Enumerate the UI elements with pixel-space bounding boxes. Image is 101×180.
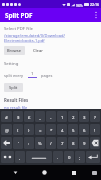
staticText: = xyxy=(39,127,42,133)
staticText: no result file xyxy=(4,105,28,109)
button[interactable]: Recents xyxy=(59,165,88,180)
staticText: : xyxy=(28,140,30,146)
button[interactable]: ( xyxy=(13,124,23,135)
staticText: Select PDF File xyxy=(4,25,33,31)
button[interactable]: 4 xyxy=(57,124,67,135)
staticText: 8 xyxy=(72,140,75,146)
button[interactable]: Shift xyxy=(1,137,12,149)
staticText: # xyxy=(5,114,8,120)
staticText: £ xyxy=(28,114,31,120)
staticText: , xyxy=(19,154,21,160)
button[interactable]: Letters xyxy=(1,151,14,163)
staticText: . xyxy=(57,154,59,160)
staticText: 22:16 xyxy=(90,2,99,7)
button[interactable]: 7 xyxy=(57,137,67,149)
staticText: /storage/emulated/0/Download/ Electronic… xyxy=(4,33,65,43)
button[interactable]: @ xyxy=(1,124,12,135)
button[interactable]: 3 xyxy=(79,111,89,122)
button[interactable]: Switch keyboard xyxy=(88,165,101,180)
button[interactable]: 0 xyxy=(64,151,74,163)
button[interactable]: Split xyxy=(4,83,23,92)
button[interactable]: Clear xyxy=(30,46,46,55)
button[interactable]: # xyxy=(1,111,12,122)
button[interactable]: : xyxy=(24,137,34,149)
staticText: Result Files xyxy=(4,97,29,103)
button[interactable]: * xyxy=(46,124,56,135)
staticText: Split PDF xyxy=(5,11,33,20)
button[interactable]: ! xyxy=(90,124,100,135)
button[interactable]: 1 xyxy=(28,70,37,78)
staticText: 5 xyxy=(72,127,75,133)
staticText: @ xyxy=(5,127,9,133)
staticText: 6 xyxy=(83,127,86,133)
staticText: 0 xyxy=(68,154,71,160)
button[interactable]: 1 xyxy=(57,111,67,122)
staticText: - xyxy=(50,114,52,120)
button[interactable]: - xyxy=(46,111,56,122)
staticText: Clear xyxy=(33,48,43,53)
button[interactable]: 8 xyxy=(68,137,78,149)
button[interactable]: More options xyxy=(90,8,101,22)
button[interactable]: = xyxy=(35,124,45,135)
staticText: 3 xyxy=(83,114,86,120)
button[interactable]: Browse xyxy=(4,46,25,55)
staticText: split every xyxy=(4,73,24,78)
button[interactable]: $ xyxy=(13,111,23,122)
button[interactable]: Home xyxy=(30,165,59,180)
staticText: pages xyxy=(41,73,53,78)
staticText: 2 xyxy=(72,114,75,120)
button[interactable]: % xyxy=(35,137,45,149)
button[interactable]: . xyxy=(53,151,63,163)
staticText: ; xyxy=(79,154,81,160)
staticText: 4 xyxy=(61,127,64,133)
button[interactable]: ' xyxy=(13,137,23,149)
button[interactable]: 9 xyxy=(79,137,89,149)
staticText: 7 xyxy=(61,140,64,146)
button[interactable]: ? xyxy=(90,111,100,122)
staticText: 1 xyxy=(31,70,34,76)
button[interactable]: Back xyxy=(0,165,30,180)
staticText: ) xyxy=(28,127,30,133)
button[interactable]: , xyxy=(15,151,25,163)
button[interactable]: _ xyxy=(35,111,45,122)
staticText: 9 xyxy=(83,140,86,146)
staticText: Browse xyxy=(7,48,22,53)
staticText: 96% xyxy=(76,3,83,7)
staticText: _ xyxy=(39,114,41,120)
staticText: ! xyxy=(94,127,96,133)
staticText: % xyxy=(38,140,42,146)
button[interactable]: ) xyxy=(24,124,34,135)
staticText: ( xyxy=(17,127,19,133)
staticText: 1 xyxy=(61,114,64,120)
button[interactable]: 2 xyxy=(68,111,78,122)
button[interactable]: Enter xyxy=(86,151,100,163)
button[interactable]: Delete xyxy=(90,137,100,149)
staticText: ? xyxy=(94,114,96,120)
staticText: $ xyxy=(17,114,20,120)
staticText: Split xyxy=(9,85,18,90)
staticText: * xyxy=(50,127,53,133)
button[interactable]: £ xyxy=(24,111,34,122)
button[interactable]: Space xyxy=(26,151,52,163)
button[interactable]: ; xyxy=(75,151,85,163)
button[interactable]: / xyxy=(46,137,56,149)
staticText: ' xyxy=(18,140,19,146)
staticText: / xyxy=(50,140,52,146)
button[interactable]: 5 xyxy=(68,124,78,135)
button[interactable]: 6 xyxy=(79,124,89,135)
staticText: Setting xyxy=(4,60,19,66)
